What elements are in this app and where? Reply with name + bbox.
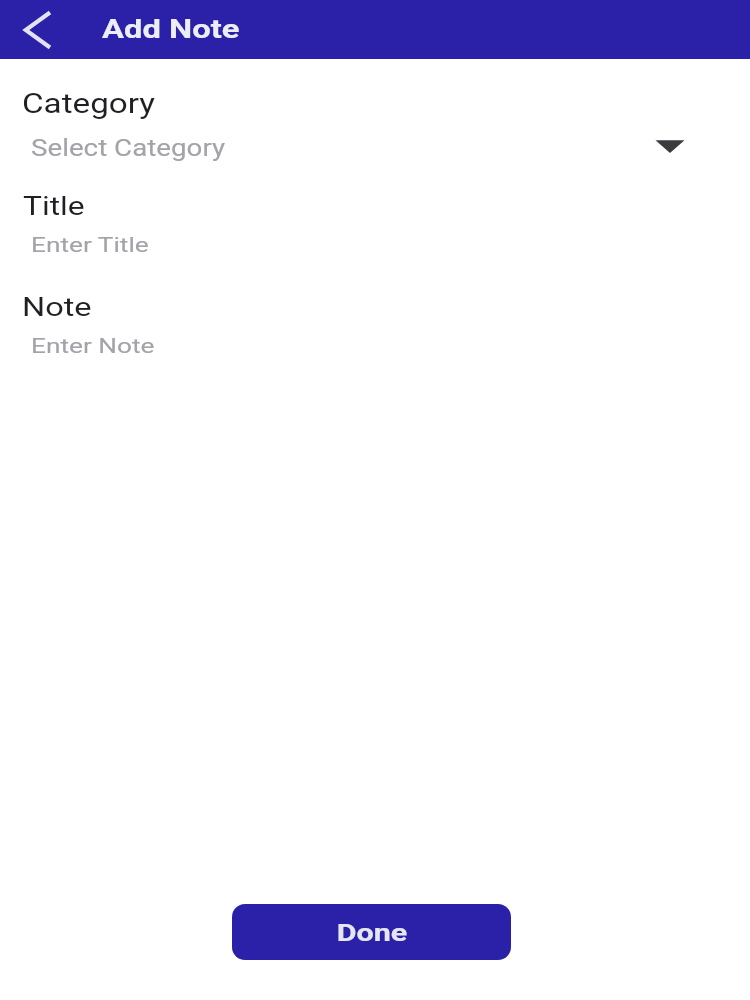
staticText: Title (23, 191, 85, 221)
staticText: Select Category (31, 134, 226, 162)
staticText: Done (336, 919, 407, 947)
button[interactable]: Back (15, 8, 59, 52)
button[interactable]: Select Category (16, 124, 716, 168)
staticText: Enter Note (31, 334, 155, 359)
button[interactable]: Done (232, 904, 511, 960)
button[interactable]: Enter Note (16, 328, 716, 364)
staticText: Add Note (102, 14, 241, 44)
staticText: Note (22, 292, 92, 322)
staticText: Category (22, 88, 156, 120)
staticText: Enter Title (31, 233, 150, 258)
button[interactable]: Enter Title (16, 226, 716, 262)
